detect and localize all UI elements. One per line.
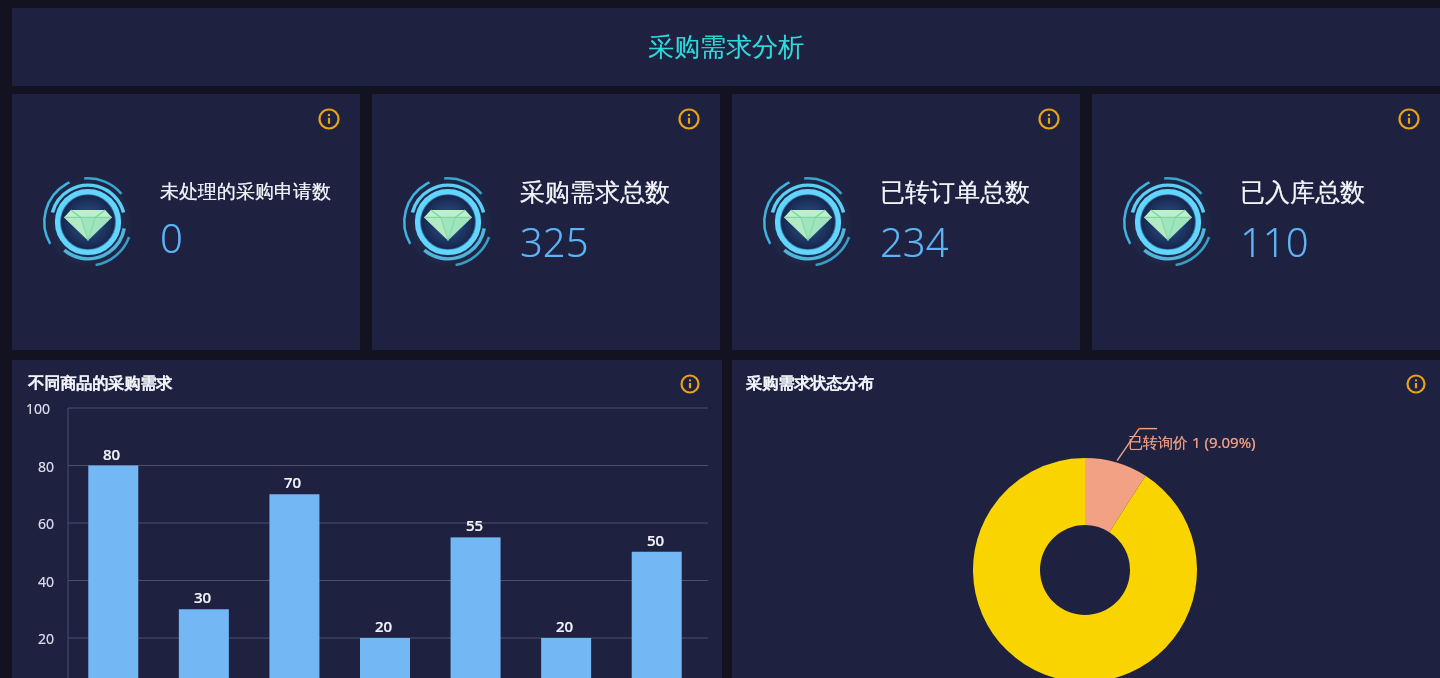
staticText: 不同商品的采购需求 [28, 374, 172, 394]
button[interactable]: Info [680, 374, 700, 394]
staticText: 234 [880, 214, 949, 268]
button[interactable]: Info [1038, 108, 1060, 130]
staticText: 已入库总数 [1240, 177, 1365, 208]
button[interactable]: Info [732, 94, 1080, 350]
staticText: 采购需求分析 [648, 31, 804, 64]
staticText: 30 [194, 587, 212, 607]
staticText: 80 [38, 457, 55, 476]
staticText: 60 [38, 514, 55, 533]
staticText: 20 [38, 629, 55, 648]
staticText: 100 [26, 399, 51, 418]
button[interactable]: Info [1092, 94, 1440, 350]
staticText: 0 [160, 210, 183, 264]
button[interactable]: 采购需求状态分布 [732, 360, 1440, 678]
staticText: 已转订单总数 [880, 177, 1030, 208]
staticText: 采购需求总数 [520, 177, 670, 208]
button[interactable]: Info [678, 108, 700, 130]
staticText: 40 [38, 572, 55, 591]
staticText: 80 [103, 444, 121, 464]
button[interactable]: Info [318, 108, 340, 130]
staticText: 20 [375, 616, 393, 636]
staticText: 110 [1240, 214, 1309, 268]
staticText: 未处理的采购申请数 [160, 180, 331, 204]
button[interactable]: Info [12, 94, 360, 350]
staticText: 70 [284, 472, 302, 492]
staticText: 55 [466, 515, 484, 535]
button[interactable]: Info [372, 94, 720, 350]
staticText: 采购需求状态分布 [746, 374, 874, 394]
staticText: 20 [556, 616, 574, 636]
button[interactable]: 不同商品的采购需求 [12, 360, 722, 678]
button[interactable]: Info [1406, 374, 1426, 394]
button[interactable]: 采购需求分析 [12, 8, 1440, 86]
staticText: 325 [520, 214, 589, 268]
staticText: 50 [647, 530, 665, 550]
button[interactable]: Info [1398, 108, 1420, 130]
staticText: 已转询价 1 (9.09%) [1128, 432, 1256, 452]
